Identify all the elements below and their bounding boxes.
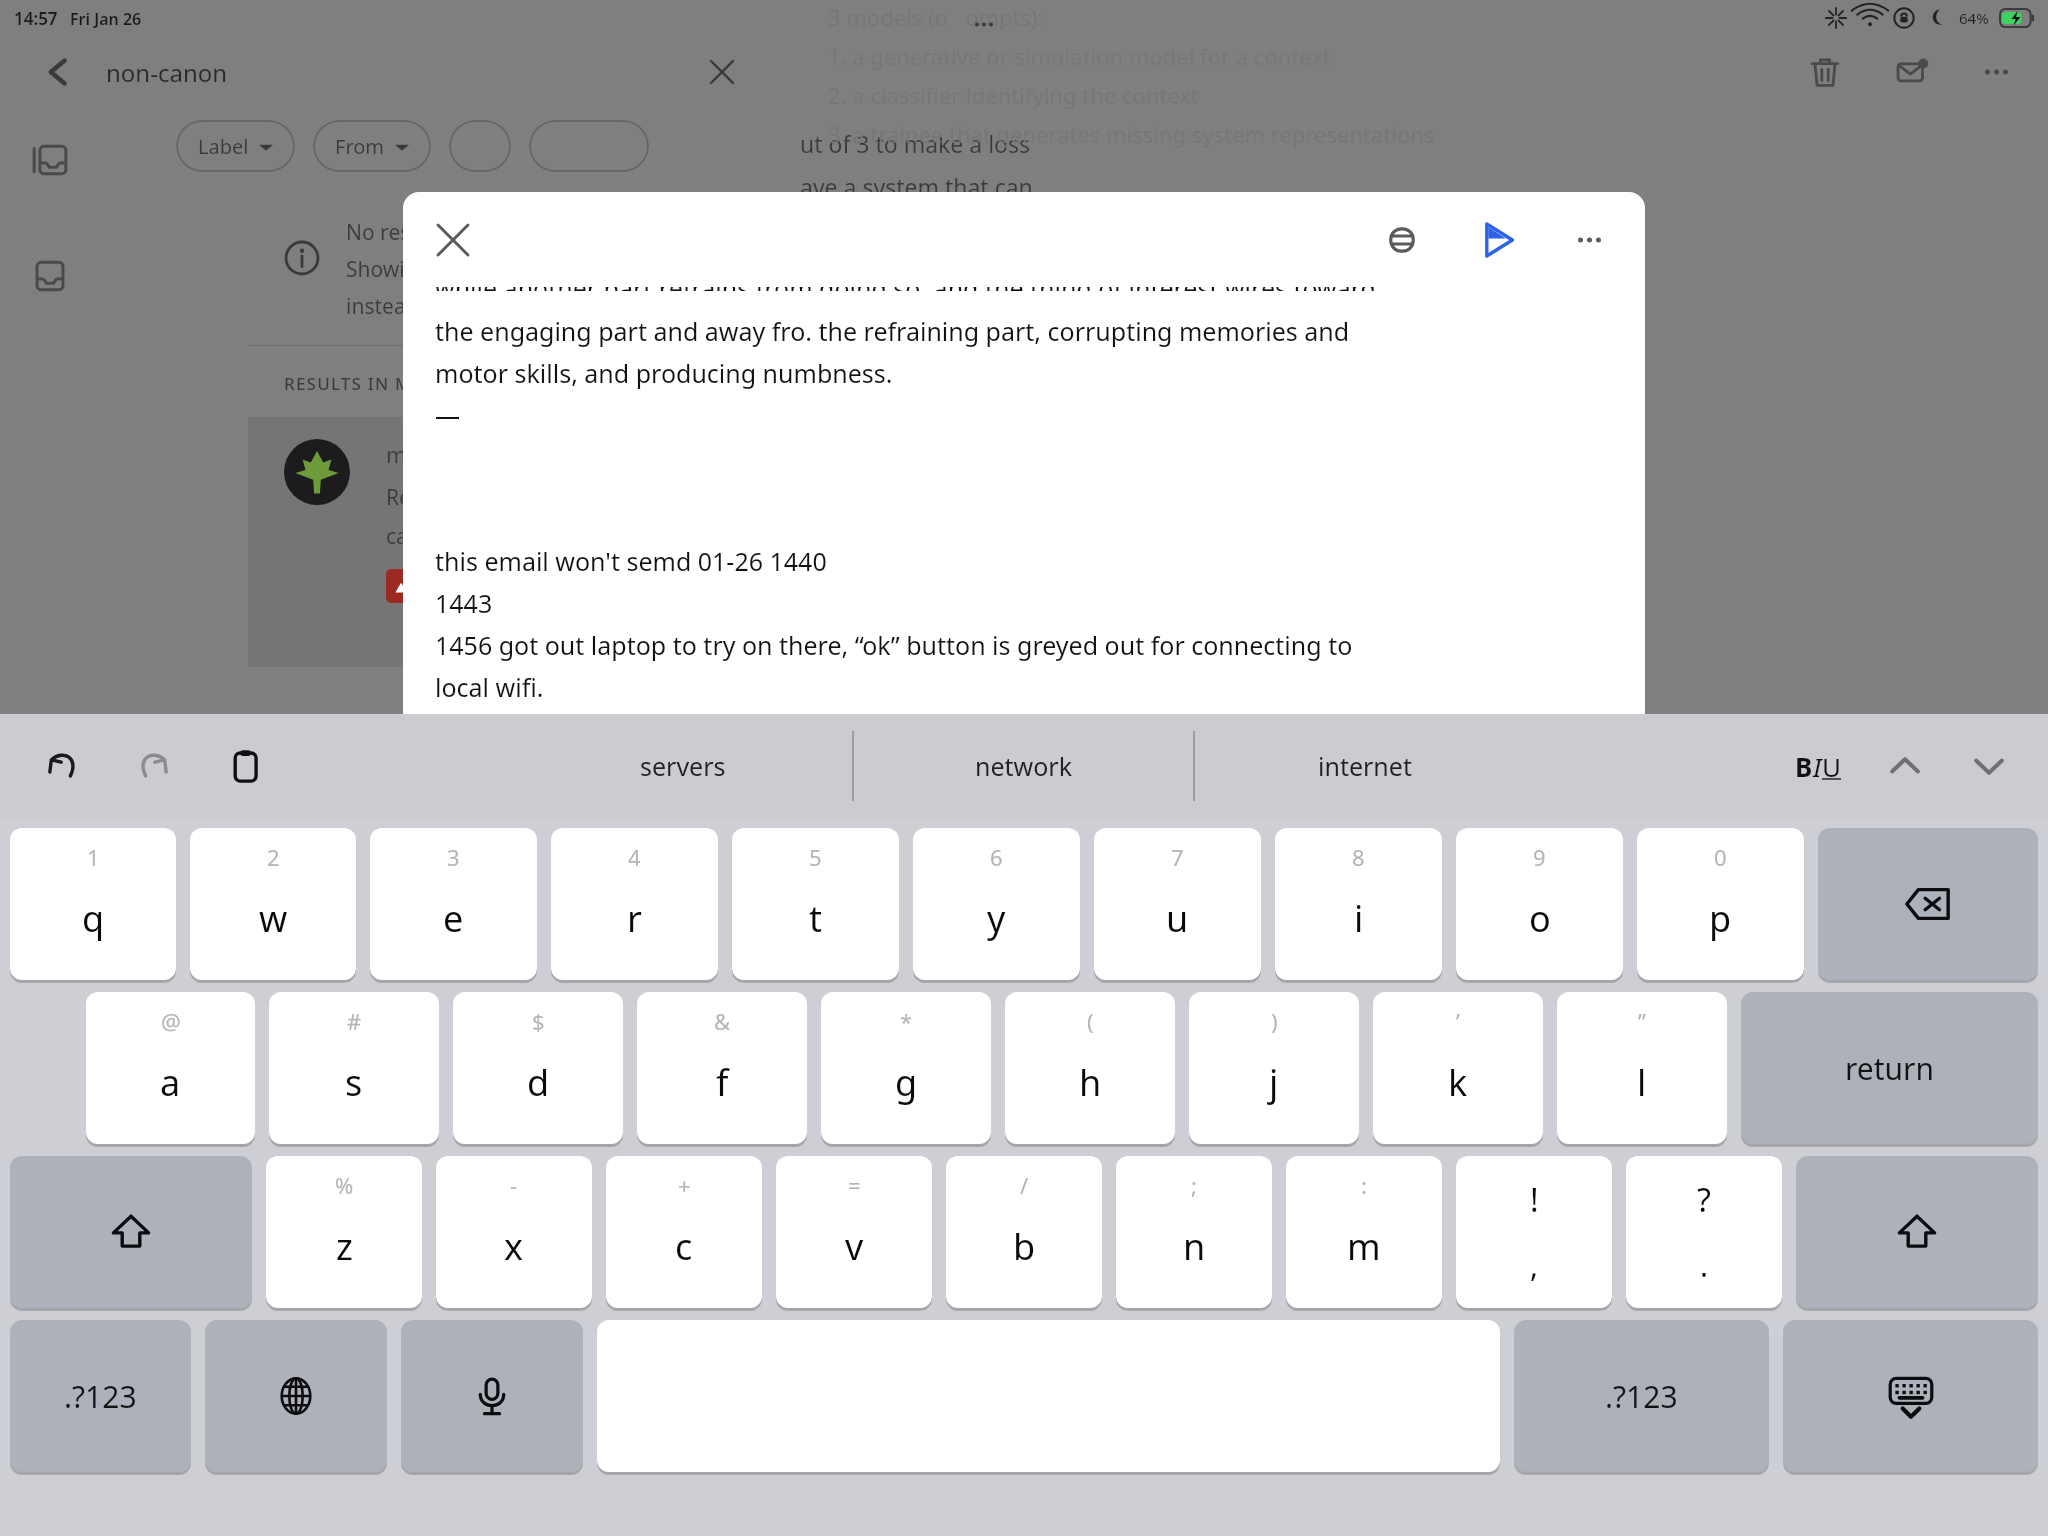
button[interactable]: Mark unread xyxy=(1890,49,1936,95)
button[interactable]: + xyxy=(606,1156,762,1308)
staticText: 1 xyxy=(87,842,100,872)
staticText: 6 xyxy=(990,842,1003,872)
staticText: # xyxy=(347,1006,362,1036)
button[interactable]: servers xyxy=(514,731,852,801)
button[interactable]: ’ xyxy=(1373,992,1543,1144)
staticText: cache do xyxy=(386,522,474,551)
staticText: y xyxy=(987,894,1006,943)
button[interactable]: ) xyxy=(1189,992,1359,1144)
staticText: / xyxy=(1020,1170,1029,1200)
staticText: + xyxy=(678,1170,691,1200)
staticText: = xyxy=(848,1170,861,1200)
staticText: i xyxy=(1354,894,1364,943)
staticText: * xyxy=(900,1006,913,1036)
button[interactable]: 9 xyxy=(1456,828,1623,980)
button[interactable]: ( xyxy=(1005,992,1175,1144)
button[interactable]: Hide keyboard xyxy=(1783,1320,2038,1472)
button[interactable]: Inbox xyxy=(22,248,78,304)
button[interactable]: Paste xyxy=(218,738,274,794)
staticText: 8 xyxy=(1352,842,1365,872)
button[interactable]: network xyxy=(854,731,1193,801)
staticText: motor skills, and producing numbness. xyxy=(435,356,893,390)
button[interactable]: Shift xyxy=(1796,1156,2038,1308)
button[interactable]: 2 xyxy=(190,828,356,980)
button[interactable]: 4 xyxy=(551,828,718,980)
button[interactable]: All inboxes xyxy=(22,132,78,188)
button[interactable]: More options xyxy=(1567,213,1621,267)
staticText: v xyxy=(845,1222,864,1271)
staticText: servers xyxy=(640,749,726,783)
button[interactable]: Backspace xyxy=(1818,828,2038,980)
staticText: — xyxy=(435,398,461,432)
staticText: & xyxy=(714,1006,731,1036)
button[interactable]: 7 xyxy=(1094,828,1261,980)
button[interactable]: Redo xyxy=(126,738,182,794)
button[interactable]: ; xyxy=(1116,1156,1272,1308)
staticText: local wifi. xyxy=(435,670,544,704)
staticText: ! xyxy=(1530,1178,1539,1222)
button[interactable] xyxy=(449,120,511,172)
button[interactable]: Delete xyxy=(1802,49,1848,95)
button[interactable]: me, xyxy=(248,417,790,667)
button[interactable]: = xyxy=(776,1156,932,1308)
button[interactable]: 6 xyxy=(913,828,1080,980)
staticText: ” xyxy=(1638,1006,1646,1036)
staticText: RESULTS IN MAI xyxy=(284,372,432,395)
staticText: k xyxy=(1448,1058,1468,1107)
button[interactable]: ? xyxy=(1626,1156,1782,1308)
button[interactable]: $ xyxy=(453,992,623,1144)
button[interactable]: 8 xyxy=(1275,828,1442,980)
button[interactable]: Dictate xyxy=(401,1320,583,1472)
button[interactable]: ” xyxy=(1557,992,1727,1144)
staticText: 5 xyxy=(809,842,822,872)
staticText: b xyxy=(1013,1222,1036,1271)
button[interactable]: Shift xyxy=(10,1156,252,1308)
staticText: , xyxy=(1530,1245,1539,1286)
button[interactable]: return xyxy=(1741,992,2038,1144)
button[interactable]: / xyxy=(946,1156,1102,1308)
button[interactable]: Undo xyxy=(34,738,90,794)
staticText: w xyxy=(259,894,288,943)
staticText: No results xyxy=(346,218,447,247)
button[interactable]: Back xyxy=(36,50,80,94)
staticText: network xyxy=(975,749,1073,783)
staticText: p xyxy=(1709,894,1732,943)
button[interactable]: .?123 xyxy=(1514,1320,1769,1472)
button[interactable]: internet xyxy=(1195,731,1534,801)
button[interactable]: * xyxy=(821,992,991,1144)
button[interactable]: : xyxy=(1286,1156,1442,1308)
button[interactable]: Next field xyxy=(1962,739,2016,793)
button[interactable]: Label xyxy=(176,120,295,172)
staticText: the engaging part and away fro. the refr… xyxy=(435,314,1350,348)
button[interactable]: 0 xyxy=(1637,828,1804,980)
button[interactable]: More options xyxy=(1978,49,2024,95)
button[interactable]: @ xyxy=(86,992,255,1144)
button[interactable]: .?123 xyxy=(10,1320,191,1472)
button[interactable]: Previous field xyxy=(1878,739,1932,793)
staticText: q xyxy=(82,894,105,943)
button[interactable]: # xyxy=(269,992,439,1144)
staticText: g xyxy=(895,1058,918,1107)
button[interactable]: Attach file xyxy=(1375,213,1429,267)
button[interactable]: ! xyxy=(1456,1156,1612,1308)
staticText: % xyxy=(335,1170,354,1200)
staticText: l xyxy=(1637,1058,1647,1107)
button[interactable]: % xyxy=(266,1156,422,1308)
button[interactable]: B xyxy=(1789,743,1848,790)
button[interactable]: 5 xyxy=(732,828,899,980)
button[interactable] xyxy=(529,120,649,172)
button[interactable]: 1 xyxy=(10,828,176,980)
button[interactable]: From xyxy=(313,120,431,172)
button[interactable]: Clear search xyxy=(700,50,744,94)
button[interactable]: Change keyboard xyxy=(205,1320,387,1472)
button[interactable]: Close compose xyxy=(425,212,481,268)
button[interactable]: Send xyxy=(1471,213,1525,267)
button[interactable]: - xyxy=(436,1156,592,1308)
button[interactable]: & xyxy=(637,992,807,1144)
staticText: 7 xyxy=(1171,842,1184,872)
button[interactable]: 3 xyxy=(370,828,537,980)
staticText: non-canon xyxy=(106,56,228,89)
